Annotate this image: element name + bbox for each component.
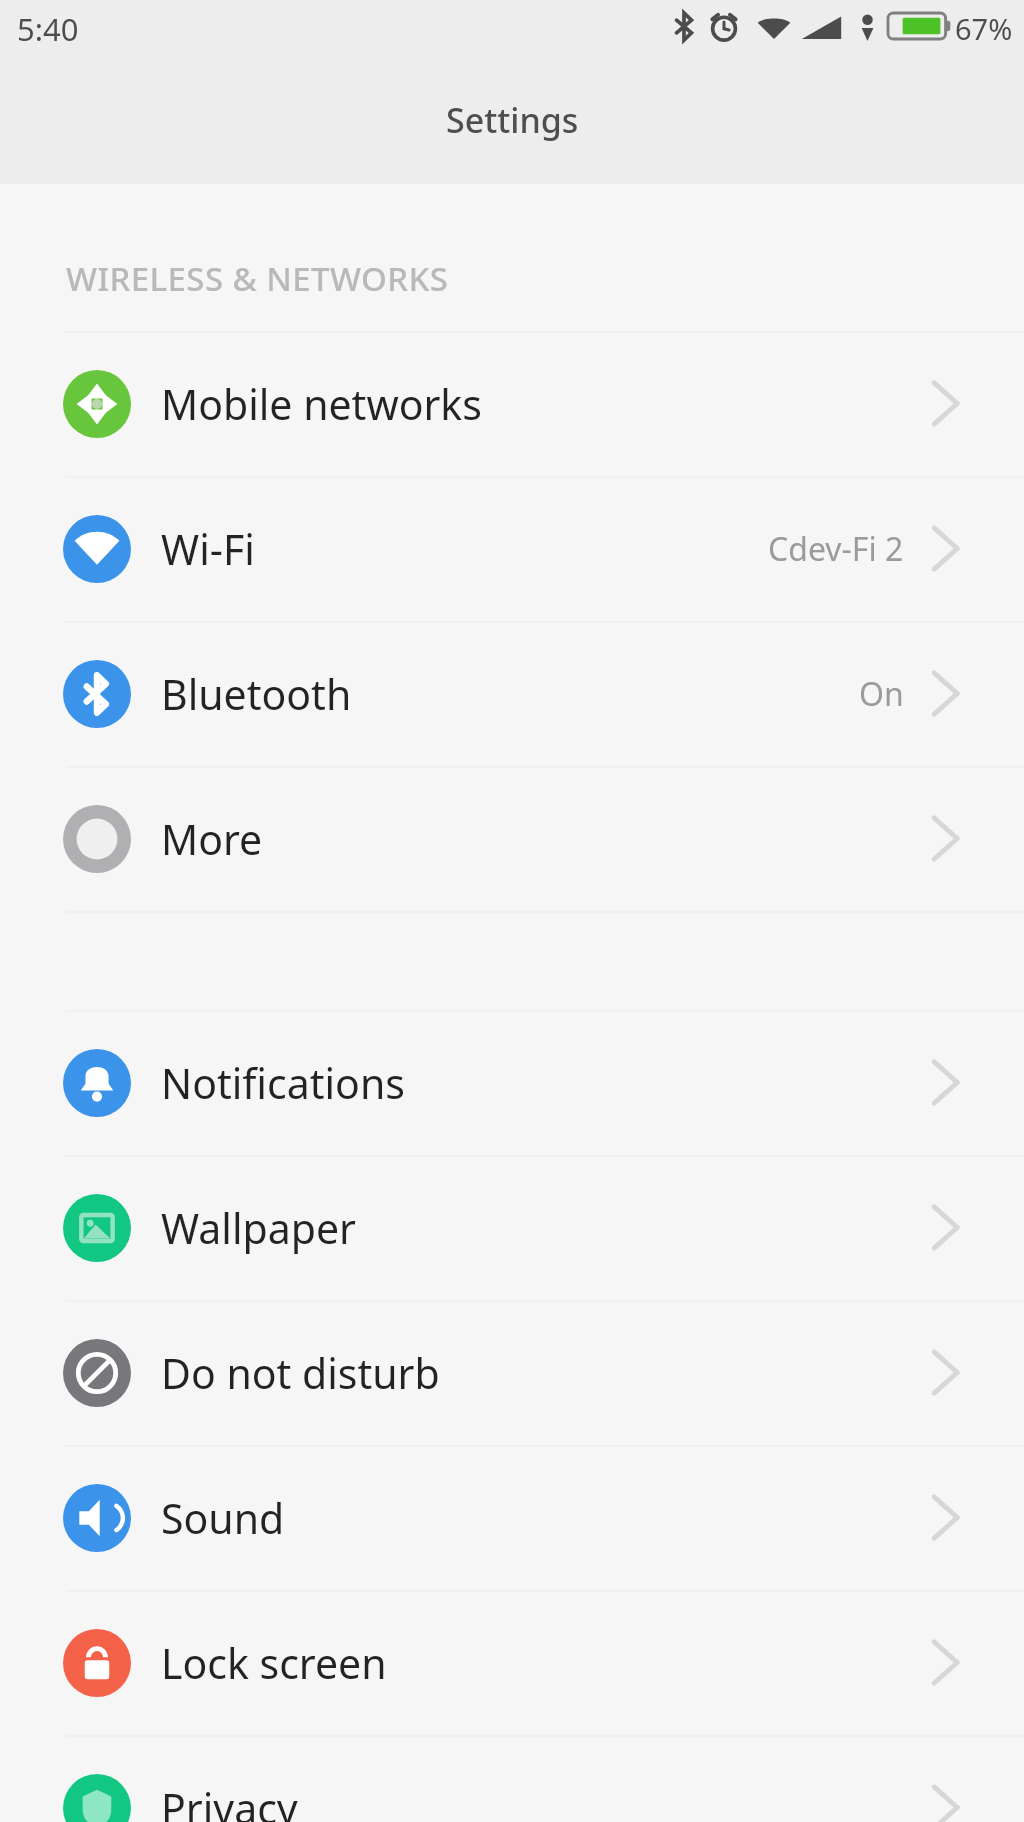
- button[interactable]: Wallpaper: [0, 1155, 1024, 1300]
- other: Lock screen: [63, 1629, 131, 1697]
- staticText: Mobile networks: [161, 376, 482, 432]
- button[interactable]: Privacy: [0, 1735, 1024, 1822]
- staticText: Wallpaper: [161, 1200, 356, 1256]
- other: Vibrate mode: [857, 12, 878, 41]
- other: Alarm set: [704, 11, 744, 41]
- button[interactable]: Lock screen: [0, 1590, 1024, 1735]
- staticText: Settings: [446, 97, 579, 143]
- button[interactable]: Wi-Fi: [0, 476, 1024, 621]
- other: Wi-Fi signal: [757, 14, 791, 40]
- button[interactable]: More: [0, 766, 1024, 911]
- button[interactable]: Bluetooth: [0, 621, 1024, 766]
- staticText: WIRELESS & NETWORKS: [66, 256, 449, 301]
- staticText: Wi-Fi: [161, 521, 255, 577]
- other: Sound: [63, 1484, 131, 1552]
- staticText: Lock screen: [161, 1635, 387, 1691]
- other: Mobile signal: [801, 14, 842, 40]
- staticText: Bluetooth: [161, 666, 352, 722]
- staticText: 5:40: [17, 8, 79, 50]
- other: More: [63, 805, 131, 873]
- staticText: Privacy: [161, 1780, 298, 1822]
- button[interactable]: Do not disturb: [0, 1300, 1024, 1445]
- staticText: Sound: [161, 1490, 285, 1546]
- other: Mobile networks: [63, 370, 131, 438]
- staticText: Cdev-Fi 2: [768, 527, 904, 571]
- staticText: Do not disturb: [161, 1345, 440, 1401]
- button[interactable]: Mobile networks: [0, 331, 1024, 476]
- other: Wi-Fi: [63, 515, 131, 583]
- other: Do not disturb: [63, 1339, 131, 1407]
- staticText: 67%: [955, 9, 1013, 48]
- other: Notifications: [63, 1049, 131, 1117]
- staticText: Notifications: [161, 1055, 405, 1111]
- other: Wallpaper: [63, 1194, 131, 1262]
- button[interactable]: Sound: [0, 1445, 1024, 1590]
- other: Privacy: [63, 1774, 131, 1822]
- staticText: On: [859, 672, 904, 716]
- other: Battery 67 percent: [888, 13, 952, 39]
- staticText: More: [161, 811, 263, 867]
- button[interactable]: Notifications: [0, 1010, 1024, 1155]
- other: Bluetooth: [63, 660, 131, 728]
- other: Bluetooth on: [673, 12, 695, 41]
